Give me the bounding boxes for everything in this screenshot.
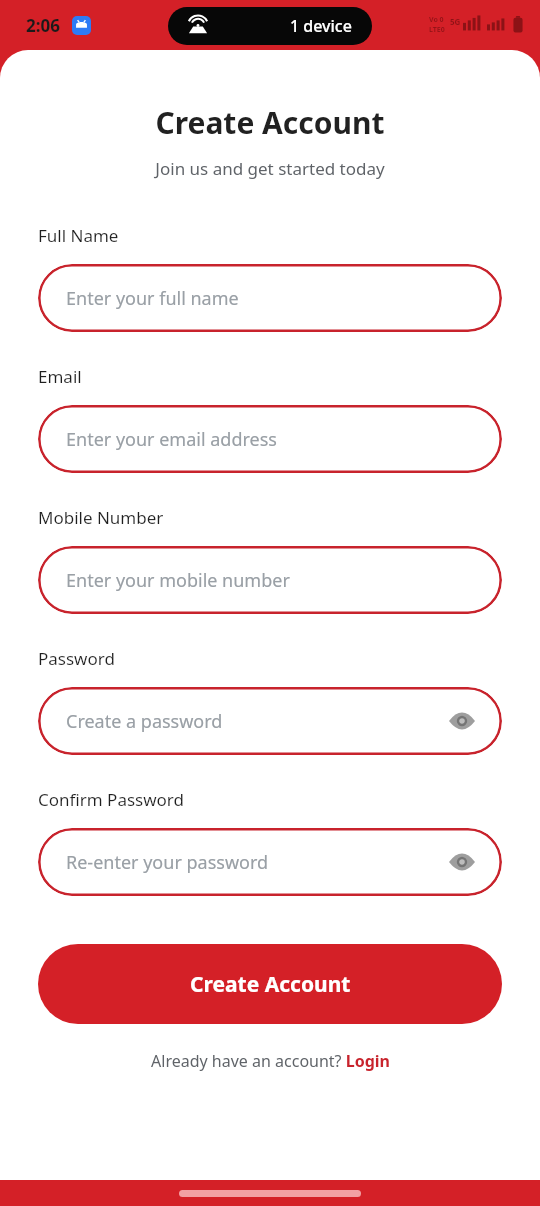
- button[interactable]: Enter your email address: [38, 405, 502, 473]
- button[interactable]: Create a password: [38, 687, 502, 755]
- staticText: 5G: [450, 16, 461, 27]
- staticText: Full Name: [38, 224, 119, 247]
- button[interactable]: Show password: [442, 842, 482, 882]
- staticText: Create a password: [66, 709, 223, 734]
- button[interactable]: Enter your mobile number: [38, 546, 502, 614]
- button[interactable]: Show password: [442, 701, 482, 741]
- other: Cast: [186, 14, 210, 38]
- button[interactable]: Cast: [168, 7, 372, 45]
- staticText: LTE0: [429, 25, 445, 35]
- staticText: Email: [38, 365, 82, 388]
- staticText: Vo 0: [429, 15, 444, 25]
- staticText: Create Account: [190, 970, 351, 999]
- staticText: 1 device: [290, 15, 352, 37]
- button[interactable]: Create Account: [38, 944, 502, 1024]
- staticText: Re-enter your password: [66, 850, 269, 875]
- staticText: Confirm Password: [38, 788, 184, 811]
- button[interactable]: Re-enter your password: [38, 828, 502, 896]
- button[interactable]: Already have an account? Login: [38, 1050, 502, 1072]
- staticText: Enter your email address: [66, 427, 277, 452]
- staticText: Enter your mobile number: [66, 568, 290, 593]
- staticText: Join us and get started today: [0, 157, 540, 180]
- button[interactable]: Enter your full name: [38, 264, 502, 332]
- staticText: Already have an account? Login: [151, 1050, 390, 1072]
- staticText: Create Account: [0, 102, 540, 143]
- staticText: 2:06: [26, 14, 60, 37]
- staticText: Enter your full name: [66, 286, 239, 311]
- staticText: Mobile Number: [38, 506, 164, 529]
- staticText: Password: [38, 647, 115, 670]
